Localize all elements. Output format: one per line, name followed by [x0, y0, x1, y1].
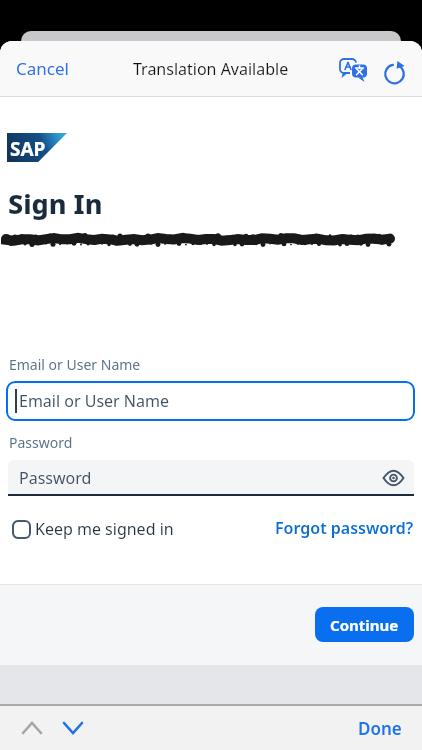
staticText: Sign In: [8, 185, 103, 222]
staticText: Keep me signed in: [35, 518, 174, 540]
button[interactable]: Forgot password?: [275, 517, 414, 539]
button[interactable]: Cancel: [10, 51, 75, 86]
staticText: Password: [19, 467, 92, 489]
staticText: Done: [358, 717, 402, 740]
staticText: SAP: [10, 136, 46, 162]
staticText: Cancel: [16, 57, 69, 80]
button[interactable]: [383, 471, 404, 485]
staticText: Forgot password?: [275, 517, 414, 539]
button[interactable]: [383, 59, 407, 85]
button[interactable]: [339, 58, 369, 86]
button[interactable]: Email or User Name: [6, 381, 415, 421]
button[interactable]: Keep me signed in: [12, 518, 174, 540]
staticText: Email or User Name: [19, 390, 169, 412]
staticText: Continue: [330, 615, 399, 635]
button[interactable]: Password: [8, 460, 414, 496]
button[interactable]: Continue: [315, 607, 414, 642]
button[interactable]: [22, 722, 42, 734]
button[interactable]: [63, 722, 83, 734]
button[interactable]: Done: [358, 717, 402, 740]
staticText: Email or User Name: [9, 355, 141, 374]
staticText: Password: [9, 433, 73, 452]
staticText: Translation Available: [133, 58, 289, 80]
